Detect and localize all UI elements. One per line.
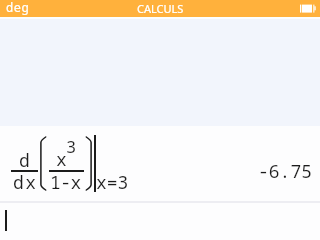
staticText: dx — [13, 170, 38, 195]
other: Battery status — [299, 0, 317, 17]
staticText: CALCULS — [137, 1, 184, 16]
staticText: x=3 — [96, 170, 129, 195]
staticText: deg — [6, 0, 30, 15]
button[interactable]: d — [0, 126, 320, 202]
staticText: 3 — [66, 135, 77, 158]
button[interactable] — [0, 201, 320, 240]
staticText: 1-x — [50, 170, 81, 195]
staticText: d — [19, 148, 30, 173]
staticText: x — [56, 147, 67, 172]
staticText: -6.75 — [258, 159, 312, 184]
button[interactable]: deg — [0, 0, 34, 17]
